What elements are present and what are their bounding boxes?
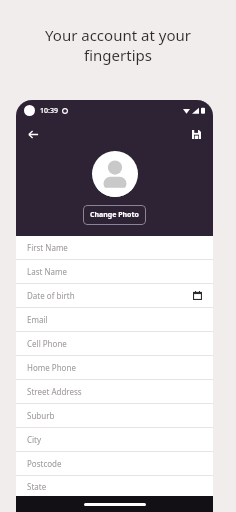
button[interactable]: Email (16, 308, 213, 332)
staticText: Change Photo (90, 210, 139, 220)
button[interactable]: First Name (16, 236, 213, 260)
staticText: Your account at your fingertips (0, 25, 236, 65)
button[interactable]: Last Name (16, 260, 213, 284)
staticText: Cell Phone (27, 338, 202, 349)
button[interactable]: City (16, 428, 213, 452)
button[interactable]: Suburb (16, 404, 213, 428)
staticText: Street Address (27, 386, 202, 397)
staticText: First Name (27, 242, 202, 253)
button[interactable]: Postcode (16, 452, 213, 476)
button[interactable]: Street Address (16, 380, 213, 404)
staticText: Last Name (27, 266, 202, 277)
staticText: Postcode (27, 458, 202, 469)
staticText: Date of birth (27, 290, 193, 301)
staticText: City (27, 434, 202, 445)
staticText: Email (27, 314, 202, 325)
staticText: Suburb (27, 410, 202, 421)
other: Pick date (193, 291, 202, 300)
button[interactable]: Home Phone (16, 356, 213, 380)
staticText: State (27, 481, 202, 492)
button[interactable]: State (16, 476, 213, 496)
button[interactable]: Date of birth (16, 284, 213, 308)
staticText: 10:39 (40, 106, 58, 116)
staticText: Home Phone (27, 362, 202, 373)
button[interactable]: Cell Phone (16, 332, 213, 356)
button[interactable]: Back (24, 125, 42, 143)
button[interactable]: Change Photo (83, 205, 146, 225)
button[interactable]: Save (187, 125, 205, 143)
